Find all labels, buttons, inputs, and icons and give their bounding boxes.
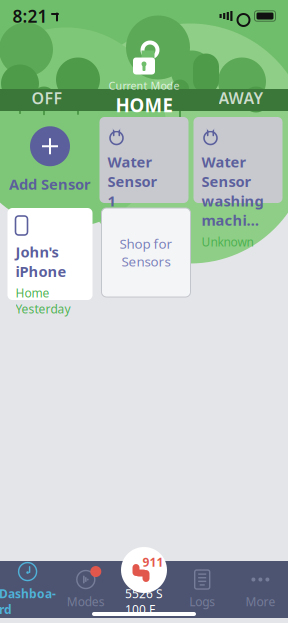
button[interactable]: More — [231, 566, 288, 612]
button[interactable]: 5526 S 100 E — [115, 566, 173, 612]
staticText: Modes — [67, 593, 105, 609]
staticText: Dashboard — [0, 586, 56, 617]
staticText: washing machi… — [201, 191, 263, 230]
button[interactable]: Shop for — [101, 208, 190, 297]
staticText: Unknown — [201, 234, 253, 250]
button[interactable]: Water Sensor — [193, 117, 282, 203]
button[interactable]: OFF — [0, 87, 95, 109]
staticText: 8:21 — [12, 4, 47, 27]
staticText: Shop for — [119, 235, 172, 252]
button[interactable]: Water Sensor — [99, 117, 188, 203]
staticText: Sensors — [121, 252, 170, 270]
staticText: Logs — [189, 593, 215, 609]
staticText: OFF — [31, 87, 62, 109]
button[interactable]: Dashboard — [0, 566, 57, 612]
button[interactable]: John's iPhone — [7, 208, 92, 300]
button[interactable]: Logs — [173, 566, 231, 612]
button[interactable]: Emergency call 911 — [121, 547, 167, 593]
staticText: Unknown — [107, 253, 159, 269]
button[interactable]: Current Mode — [95, 85, 192, 111]
button[interactable]: AWAY — [192, 87, 288, 109]
button[interactable]: Add Sensor — [5, 117, 94, 203]
staticText: Water Sensor — [201, 152, 251, 191]
staticText: Add Sensor — [9, 174, 91, 194]
staticText: HOME — [115, 93, 172, 117]
button[interactable]: Modes — [57, 566, 115, 612]
staticText: Water Sensor — [107, 152, 157, 191]
staticText: John's iPhone — [15, 242, 66, 281]
staticText: More — [245, 593, 275, 609]
staticText: 1 Basement — [107, 191, 180, 249]
staticText: AWAY — [218, 87, 263, 109]
staticText: Current Mode — [108, 78, 179, 93]
staticText: 911 — [142, 554, 163, 570]
staticText: Home Yesterday — [15, 285, 70, 317]
staticText: 5526 S 100 E — [125, 586, 163, 617]
